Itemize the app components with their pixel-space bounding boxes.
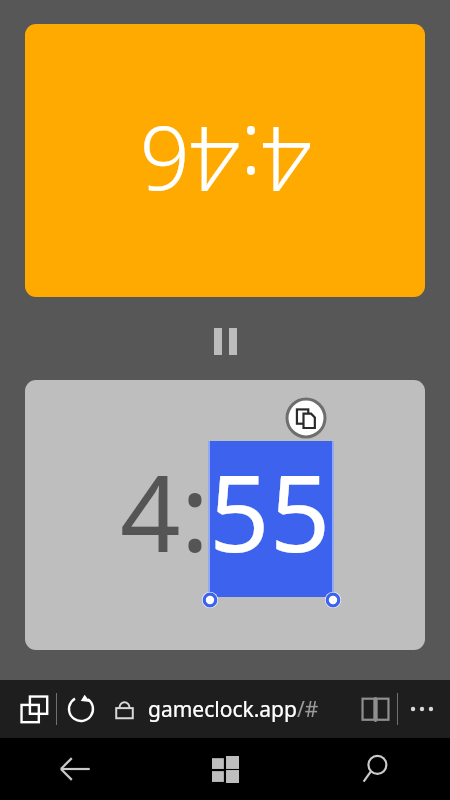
staticText: gameclock.app/# <box>148 695 319 724</box>
button[interactable]: More options <box>398 685 446 733</box>
staticText: 4:46 <box>139 101 312 221</box>
staticText: 4:55 <box>120 439 331 583</box>
button[interactable]: Tabs <box>12 687 56 731</box>
button[interactable]: Pause <box>205 324 245 358</box>
button[interactable]: Refresh <box>57 685 105 733</box>
button[interactable]: Back <box>0 738 150 800</box>
button[interactable]: Reading view <box>353 687 397 731</box>
button[interactable]: Search <box>300 738 450 800</box>
button[interactable]: 4:46 <box>25 24 425 297</box>
button[interactable]: 4:55 <box>25 380 425 650</box>
button[interactable]: Copy <box>285 397 327 439</box>
button[interactable]: Home <box>150 738 300 800</box>
